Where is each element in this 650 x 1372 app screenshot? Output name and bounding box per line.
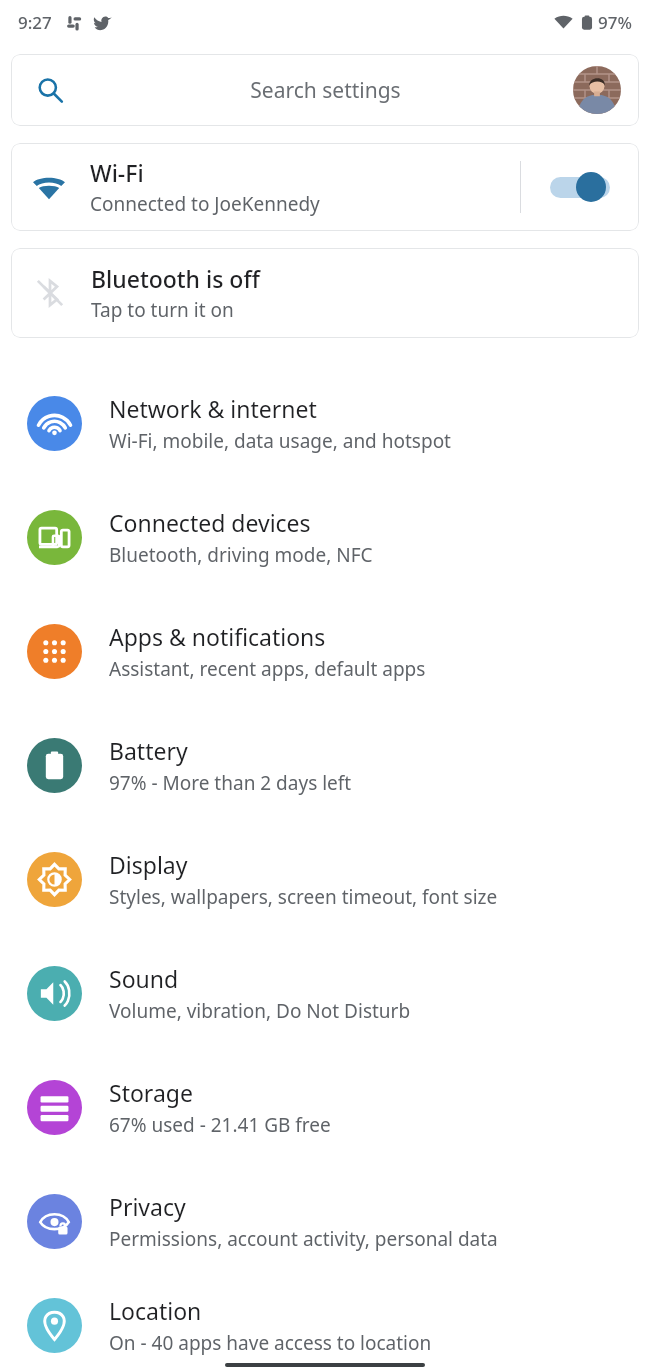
staticText: Assistant, recent apps, default apps: [109, 656, 426, 682]
staticText: Apps & notifications: [109, 621, 326, 652]
staticText: Storage: [109, 1077, 193, 1108]
staticText: 97% - More than 2 days left: [109, 770, 352, 796]
staticText: Connected devices: [109, 507, 311, 538]
staticText: Wi-Fi, mobile, data usage, and hotspot: [109, 428, 451, 454]
button[interactable]: Display: [0, 822, 650, 936]
staticText: Display: [109, 849, 188, 880]
staticText: Battery: [109, 735, 188, 766]
staticText: Location: [109, 1295, 202, 1326]
button[interactable]: Account: [573, 66, 621, 114]
staticText: Tap to turn it on: [91, 297, 234, 323]
staticText: Connected to JoeKennedy: [90, 191, 320, 217]
staticText: Wi-Fi: [90, 157, 144, 188]
staticText: Permissions, account activity, personal …: [109, 1226, 498, 1252]
button[interactable]: Search settings: [11, 54, 639, 126]
staticText: Network & internet: [109, 393, 317, 424]
button[interactable]: Bluetooth is off: [11, 248, 639, 338]
button[interactable]: Wi-Fi toggle: [521, 143, 639, 231]
button[interactable]: Privacy: [0, 1164, 650, 1278]
staticText: Styles, wallpapers, screen timeout, font…: [109, 884, 498, 910]
staticText: Bluetooth, driving mode, NFC: [109, 542, 373, 568]
staticText: On - 40 apps have access to location: [109, 1330, 432, 1356]
button[interactable]: Storage: [0, 1050, 650, 1164]
staticText: 67% used - 21.41 GB free: [109, 1112, 331, 1138]
button[interactable]: Apps & notifications: [0, 594, 650, 708]
button[interactable]: Battery: [0, 708, 650, 822]
staticText: Search settings: [250, 76, 401, 105]
button[interactable]: Sound: [0, 936, 650, 1050]
button[interactable]: Network & internet: [0, 366, 650, 480]
staticText: Privacy: [109, 1191, 186, 1222]
staticText: Sound: [109, 963, 179, 994]
button[interactable]: Location: [0, 1278, 650, 1372]
staticText: 97%: [598, 11, 632, 34]
staticText: 9:27: [18, 11, 52, 34]
staticText: Bluetooth is off: [91, 263, 260, 294]
staticText: Volume, vibration, Do Not Disturb: [109, 998, 411, 1024]
button[interactable]: Wi-Fi: [11, 143, 639, 231]
button[interactable]: Connected devices: [0, 480, 650, 594]
